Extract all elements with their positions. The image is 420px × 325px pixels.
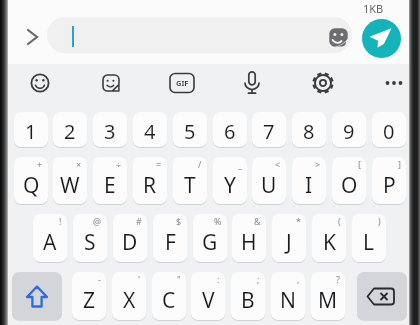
staticText: S [84,228,96,257]
button[interactable]: V [191,272,225,320]
button[interactable] [234,65,270,101]
staticText: 9 [343,118,355,145]
button[interactable]: GIF [164,65,200,101]
staticText: × [76,158,82,170]
button[interactable]: D [113,214,147,262]
staticText: > [315,158,321,170]
staticText: 1 [25,118,37,145]
button[interactable]: 0 [372,112,406,147]
staticText: - [98,273,101,285]
staticText: + [37,158,43,170]
button[interactable] [329,28,348,47]
staticText: 6 [224,118,236,145]
button[interactable]: L [352,214,386,262]
button[interactable]: 8 [292,112,326,147]
button[interactable]: 7 [252,112,286,147]
button[interactable] [47,17,352,53]
staticText: 4 [144,118,156,145]
staticText: E [104,171,116,200]
button[interactable] [357,272,407,320]
staticText: 5 [184,118,196,145]
button[interactable]: 9 [332,112,366,147]
button[interactable]: Z [72,272,106,320]
staticText: 8 [303,118,315,145]
staticText: Q [23,171,40,200]
button[interactable]: B [231,272,265,320]
button[interactable]: O [332,157,366,204]
button[interactable]: J [272,214,306,262]
staticText: Z [83,286,96,315]
button[interactable]: 3 [93,112,127,147]
staticText: O [341,171,358,200]
staticText: G [202,228,218,257]
button[interactable]: X [112,272,146,320]
staticText: ' [138,273,141,285]
button[interactable] [22,26,44,48]
button[interactable]: M [311,272,345,320]
button[interactable]: R [133,157,167,204]
staticText: W [60,171,80,200]
staticText: T [184,171,196,200]
staticText: $ [176,215,182,227]
staticText: @ [93,215,102,227]
button[interactable]: Q [14,157,48,204]
button[interactable]: E [93,157,127,204]
button[interactable]: C [152,272,186,320]
staticText: % [214,215,222,227]
staticText: P [383,171,396,200]
staticText: , [297,273,300,285]
button[interactable] [93,65,129,101]
button[interactable] [305,65,341,101]
staticText: B [241,286,255,315]
staticText: ; [257,273,260,285]
staticText: GIF [176,78,189,88]
button[interactable]: F [153,214,187,262]
button[interactable]: 2 [53,112,87,147]
staticText: # [136,215,142,227]
staticText: ! [59,215,62,227]
button[interactable]: 4 [133,112,167,147]
button[interactable]: S [73,214,107,262]
button[interactable] [376,65,412,101]
staticText: 1KB [363,1,384,16]
staticText: F [165,228,176,257]
staticText: ] [398,158,401,170]
button[interactable] [22,65,58,101]
staticText: C [162,286,176,315]
staticText: M [318,286,338,315]
button[interactable]: K [312,214,346,262]
staticText: V [202,286,215,315]
button[interactable]: 5 [173,112,207,147]
button[interactable]: 6 [213,112,247,147]
button[interactable]: 1 [14,112,48,147]
button[interactable]: U [252,157,286,204]
staticText: D [122,228,138,257]
button[interactable]: N [271,272,305,320]
staticText: = [156,158,162,170]
button[interactable]: A [33,214,67,262]
staticText: 0 [383,118,395,145]
button[interactable]: W [53,157,87,204]
button[interactable]: T [173,157,207,204]
staticText: < [275,158,281,170]
staticText: X [123,286,136,315]
button[interactable]: H [232,214,266,262]
staticText: H [241,228,257,257]
staticText: Y [224,171,236,200]
button[interactable]: G [193,214,227,262]
staticText: : [217,273,220,285]
button[interactable] [362,19,401,58]
staticText: N [280,286,296,315]
button[interactable]: Y [213,157,247,204]
staticText: 3 [104,118,116,145]
staticText: K [323,228,336,257]
staticText: ÷ [116,158,122,170]
staticText: ) [378,215,381,227]
staticText: J [286,228,292,257]
button[interactable]: P [372,157,406,204]
staticText: U [261,171,277,200]
button[interactable] [12,272,62,320]
staticText: & [254,215,261,227]
staticText: ( [338,215,341,227]
button[interactable]: I [292,157,326,204]
